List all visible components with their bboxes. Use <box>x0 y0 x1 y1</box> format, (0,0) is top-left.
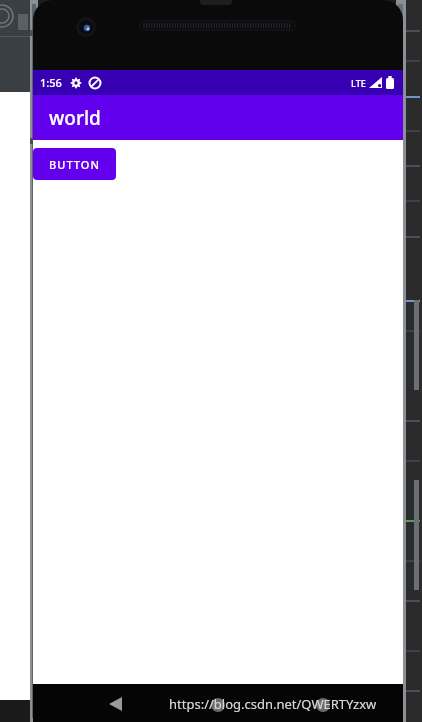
staticText: 1:56 <box>40 75 62 90</box>
staticText: BUTTON <box>49 157 100 172</box>
button[interactable]: BUTTON <box>33 148 116 180</box>
staticText: LTE <box>351 77 366 89</box>
button[interactable]: Back <box>105 694 125 714</box>
staticText: https://blog.csdn.net/QWERTYzxw <box>169 695 377 713</box>
staticText: world <box>49 105 101 131</box>
